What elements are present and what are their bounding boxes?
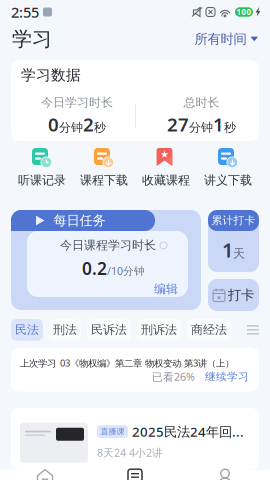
staticText: 刑诉法 [141, 322, 177, 337]
staticText: 继续学习 [205, 370, 249, 383]
staticText: 打卡 [228, 287, 254, 303]
staticText: 秒 [224, 120, 236, 135]
button[interactable]: 首页 [0, 470, 90, 480]
staticText: 上次学习 03《物权编》第二章 物权变动 第3讲（上） [20, 357, 234, 369]
staticText: 0.2 [82, 257, 107, 280]
button[interactable]: 刑诉法 [137, 319, 181, 341]
staticText: 天 [233, 246, 245, 261]
staticText: 学习 [12, 27, 52, 51]
staticText: 今日课程学习时长 [60, 238, 156, 253]
staticText: 0 [48, 112, 59, 137]
button[interactable]: 刑法 [49, 319, 81, 341]
button[interactable]: 民诉法 [87, 319, 131, 341]
button[interactable]: 上次学习 03《物权编》第二章 物权变动 第3讲（上） [11, 348, 259, 392]
button[interactable]: 打卡 [208, 279, 259, 311]
staticText: 刑法 [53, 322, 77, 337]
button[interactable]: 直播课 [11, 408, 259, 470]
staticText: 所有时间 [194, 31, 246, 47]
staticText: 1 [213, 112, 224, 137]
staticText: 2 [83, 112, 94, 137]
button[interactable]: 我的 [180, 470, 270, 480]
button[interactable]: 编辑 [33, 282, 178, 296]
button[interactable]: 讲义下载 [197, 141, 259, 204]
button[interactable]: 民法 [11, 319, 43, 341]
staticText: 8天24 4小2讲 [97, 445, 163, 460]
staticText: 编辑 [154, 282, 178, 296]
staticText: 民诉法 [91, 322, 127, 337]
button[interactable]: 课程下载 [73, 141, 135, 204]
staticText: 今日学习时长 [41, 95, 113, 110]
button[interactable]: 商经法 [187, 319, 231, 341]
button[interactable]: 收藏课程 [135, 141, 197, 204]
staticText: 秒 [94, 120, 106, 135]
staticText: 学习数据 [21, 66, 81, 84]
staticText: 课程下载 [80, 173, 128, 188]
staticText: 100 [236, 7, 251, 17]
staticText: 2:55 [11, 2, 39, 22]
staticText: 民法 [15, 322, 39, 337]
staticText: /10分钟 [107, 264, 145, 278]
button[interactable]: 听课记录 [11, 141, 73, 204]
button[interactable]: All subjects [247, 325, 259, 335]
staticText: 分钟 [189, 120, 213, 135]
staticText: 每日任务 [53, 212, 105, 229]
staticText: 听课记录 [18, 173, 66, 188]
staticText: 商经法 [191, 322, 227, 337]
staticText: 直播课 [100, 427, 124, 436]
staticText: 2025民法24年回忆版真 [132, 423, 250, 440]
button[interactable]: 学习 [90, 470, 180, 480]
staticText: 总时长 [183, 95, 219, 110]
button[interactable]: 所有时间 [194, 31, 258, 47]
staticText: 27 [167, 112, 189, 137]
staticText: 分钟 [59, 120, 83, 135]
staticText: 讲义下载 [204, 173, 252, 188]
staticText: 1 [222, 236, 233, 263]
staticText: 收藏课程 [142, 173, 190, 188]
staticText: 已看26% [152, 370, 195, 384]
staticText: 累计打卡 [211, 214, 255, 227]
